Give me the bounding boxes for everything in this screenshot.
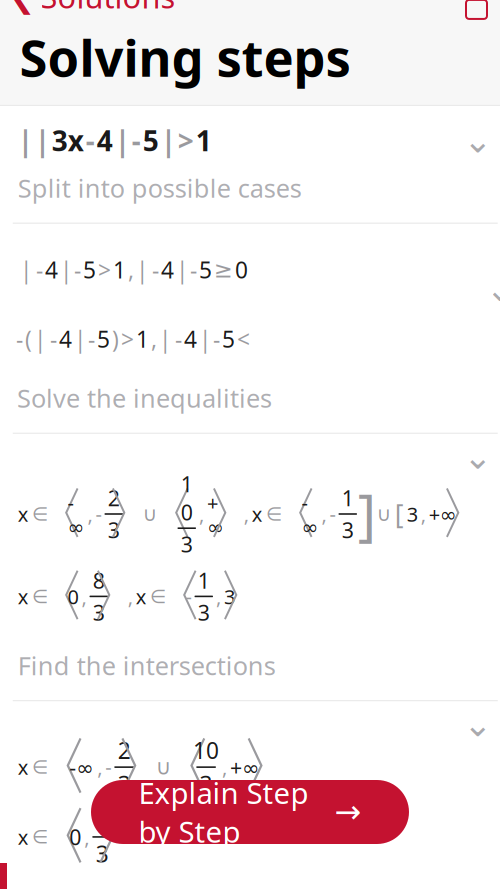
staticText: > — [98, 255, 111, 285]
staticText: | — [35, 122, 50, 159]
staticText: 1 — [113, 255, 126, 285]
staticText: , — [421, 501, 426, 527]
staticText: - — [132, 122, 141, 159]
staticText: 4 — [45, 255, 58, 285]
staticText: | — [161, 122, 176, 159]
staticText: 1 — [198, 566, 210, 595]
staticText: ∪ — [377, 503, 392, 525]
button[interactable]: ❮ — [0, 0, 175, 23]
staticText: | — [18, 122, 33, 159]
staticText: 〈 — [140, 480, 196, 548]
staticText: | — [159, 324, 171, 354]
staticText: 10 — [193, 735, 219, 765]
staticText: 0 — [235, 255, 248, 285]
staticText: > — [178, 122, 194, 159]
staticText: , — [216, 583, 221, 610]
staticText: 0 — [67, 583, 78, 610]
staticText: 3 — [118, 769, 131, 799]
staticText: x — [252, 501, 263, 527]
staticText: 8 — [96, 805, 109, 835]
staticText: 3 — [200, 769, 213, 799]
staticText: , — [97, 754, 102, 780]
staticText: 〉 — [113, 729, 176, 806]
button[interactable]: | — [0, 224, 500, 433]
staticText: Split into possible cases — [18, 171, 302, 205]
button[interactable]: ⌄ — [0, 701, 500, 889]
staticText: 5 — [97, 324, 110, 354]
staticText: -∞ — [302, 489, 319, 539]
staticText: 4 — [97, 122, 113, 159]
staticText: , — [151, 324, 157, 354]
staticText: - — [186, 583, 192, 610]
staticText: - — [105, 754, 111, 780]
staticText: -∞ — [67, 489, 84, 539]
staticText: 3 — [181, 530, 193, 558]
staticText: ∈ — [150, 586, 166, 607]
staticText: Find the intersections — [18, 649, 276, 682]
staticText: 3 — [407, 501, 418, 527]
staticText: ⌄ — [486, 270, 500, 309]
staticText: x — [136, 583, 147, 610]
staticText: | — [115, 122, 130, 159]
staticText: , — [87, 501, 92, 527]
staticText: < — [237, 324, 250, 354]
staticText: x — [18, 583, 29, 610]
staticText: 〈 — [30, 562, 86, 631]
staticText: 10 — [181, 470, 193, 526]
button[interactable]: Explain Step by Step — [91, 780, 409, 844]
staticText: 〈 — [27, 729, 90, 806]
staticText: 〉 — [439, 480, 495, 548]
staticText: 1 — [136, 324, 149, 354]
staticText: 0 — [69, 823, 81, 851]
staticText: , — [128, 583, 133, 610]
staticText: -∞ — [69, 753, 94, 781]
staticText: ∈ — [32, 826, 48, 847]
button[interactable]: Share — [455, 0, 500, 17]
staticText: 3 — [342, 516, 354, 544]
staticText: 5 — [143, 122, 159, 159]
staticText: +∞ — [207, 489, 224, 539]
staticText: [ — [395, 496, 404, 532]
staticText: 3 — [198, 598, 210, 626]
staticText: 〉 — [105, 480, 161, 548]
staticText: 8 — [93, 566, 105, 595]
staticText: 2 — [118, 735, 131, 765]
staticText: x — [18, 824, 29, 850]
staticText: - — [190, 255, 197, 285]
staticText: 〉 — [206, 480, 262, 548]
staticText: | — [176, 255, 188, 285]
staticText: 4 — [161, 255, 174, 285]
staticText: ↑ — [466, 0, 487, 3]
staticText: ∈ — [32, 756, 48, 778]
staticText: +∞ — [429, 501, 457, 527]
staticText: , — [244, 501, 249, 527]
staticText: | — [34, 324, 46, 354]
staticText: 〉 — [91, 798, 154, 875]
staticText: 〈 — [30, 480, 86, 548]
staticText: > — [121, 324, 134, 354]
staticText: 1 — [342, 484, 354, 512]
staticText: Explain Step by Step — [138, 773, 308, 851]
staticText: ≥ — [214, 257, 233, 283]
staticText: ( — [25, 324, 32, 354]
staticText: 〉 — [217, 562, 273, 631]
staticText: ] — [358, 477, 376, 551]
button[interactable]: ⌄ — [0, 434, 500, 700]
staticText: +∞ — [230, 753, 260, 781]
staticText: - — [152, 255, 159, 285]
staticText: Solving steps — [19, 24, 350, 91]
staticText: | — [60, 255, 72, 285]
button[interactable]: | — [0, 106, 500, 223]
staticText: Solve the inequalities — [17, 381, 272, 415]
staticText: - — [213, 324, 220, 354]
staticText: 〉 — [90, 562, 146, 631]
staticText: - — [74, 255, 81, 285]
staticText: - — [88, 324, 95, 354]
staticText: 4 — [59, 324, 72, 354]
staticText: ⌄ — [463, 437, 492, 476]
staticText: - — [86, 122, 95, 159]
staticText: 2 — [108, 484, 120, 512]
staticText: 〈 — [27, 798, 90, 875]
staticText: 5 — [222, 324, 235, 354]
